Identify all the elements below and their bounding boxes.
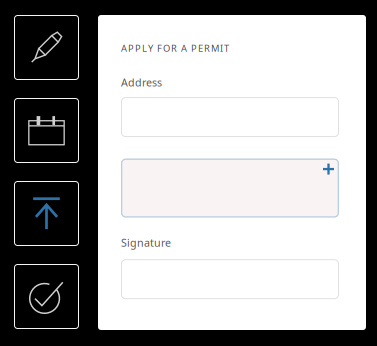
staticText: Signature <box>121 236 171 250</box>
staticText: APPLY FOR A PERMIT <box>121 42 229 54</box>
button[interactable]: Schedule <box>14 98 79 163</box>
button[interactable]: Upload <box>14 181 79 246</box>
button[interactable]: Add photo <box>121 159 339 218</box>
button[interactable]: Approve <box>14 264 79 329</box>
staticText: Address <box>121 75 162 90</box>
button[interactable]: Address <box>121 97 339 137</box>
button[interactable]: Signature <box>121 259 339 299</box>
button[interactable]: Draw <box>14 15 79 80</box>
